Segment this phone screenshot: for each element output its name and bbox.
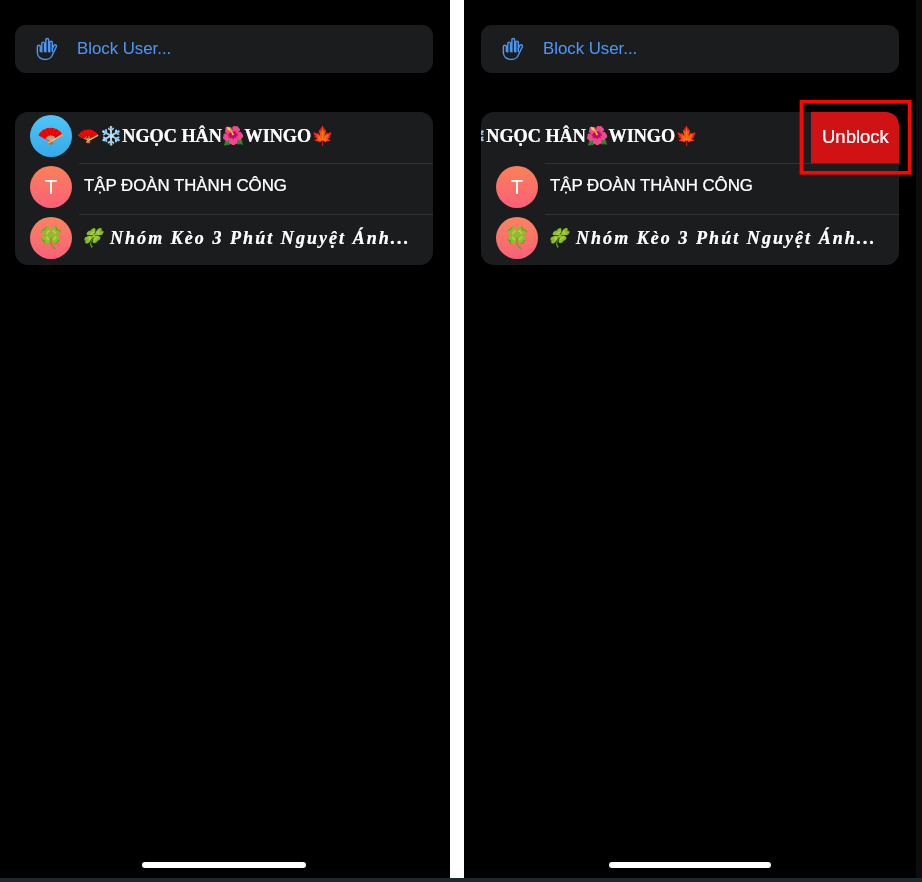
button[interactable]: 🍀 [15, 214, 433, 265]
staticText: Unblock [822, 126, 889, 147]
button[interactable]: T [15, 163, 433, 214]
button[interactable]: Unblock [811, 112, 899, 163]
staticText: Block User... [543, 39, 638, 58]
staticText: 🍀 Nhóm Kèo 3 Phút Nguyệt Ánh... [545, 227, 877, 248]
staticText: T [511, 176, 523, 198]
button[interactable]: Block user [15, 25, 433, 73]
staticText: 🍀 [38, 226, 65, 251]
staticText: 🪭❄️NGỌC HÂN🌺WINGO🍁 [481, 125, 698, 146]
staticText: T [45, 176, 57, 198]
staticText: TẬP ĐOÀN THÀNH CÔNG [550, 176, 753, 195]
button[interactable]: 🪭 [481, 112, 899, 163]
staticText: 🪭❄️NGỌC HÂN🌺WINGO🍁 [77, 125, 334, 146]
staticText: 🪭 [37, 123, 65, 149]
button[interactable]: T [481, 163, 899, 214]
button[interactable]: 🍀 [481, 214, 899, 265]
button[interactable]: 🪭 [15, 112, 433, 163]
staticText: Block User... [77, 39, 172, 58]
button[interactable]: Block user [481, 25, 899, 73]
other: Block user [36, 37, 57, 62]
other: Block user [502, 37, 523, 62]
staticText: TẬP ĐOÀN THÀNH CÔNG [84, 176, 287, 195]
staticText: 🍀 [504, 226, 531, 251]
staticText: 🍀 Nhóm Kèo 3 Phút Nguyệt Ánh... [79, 227, 411, 248]
